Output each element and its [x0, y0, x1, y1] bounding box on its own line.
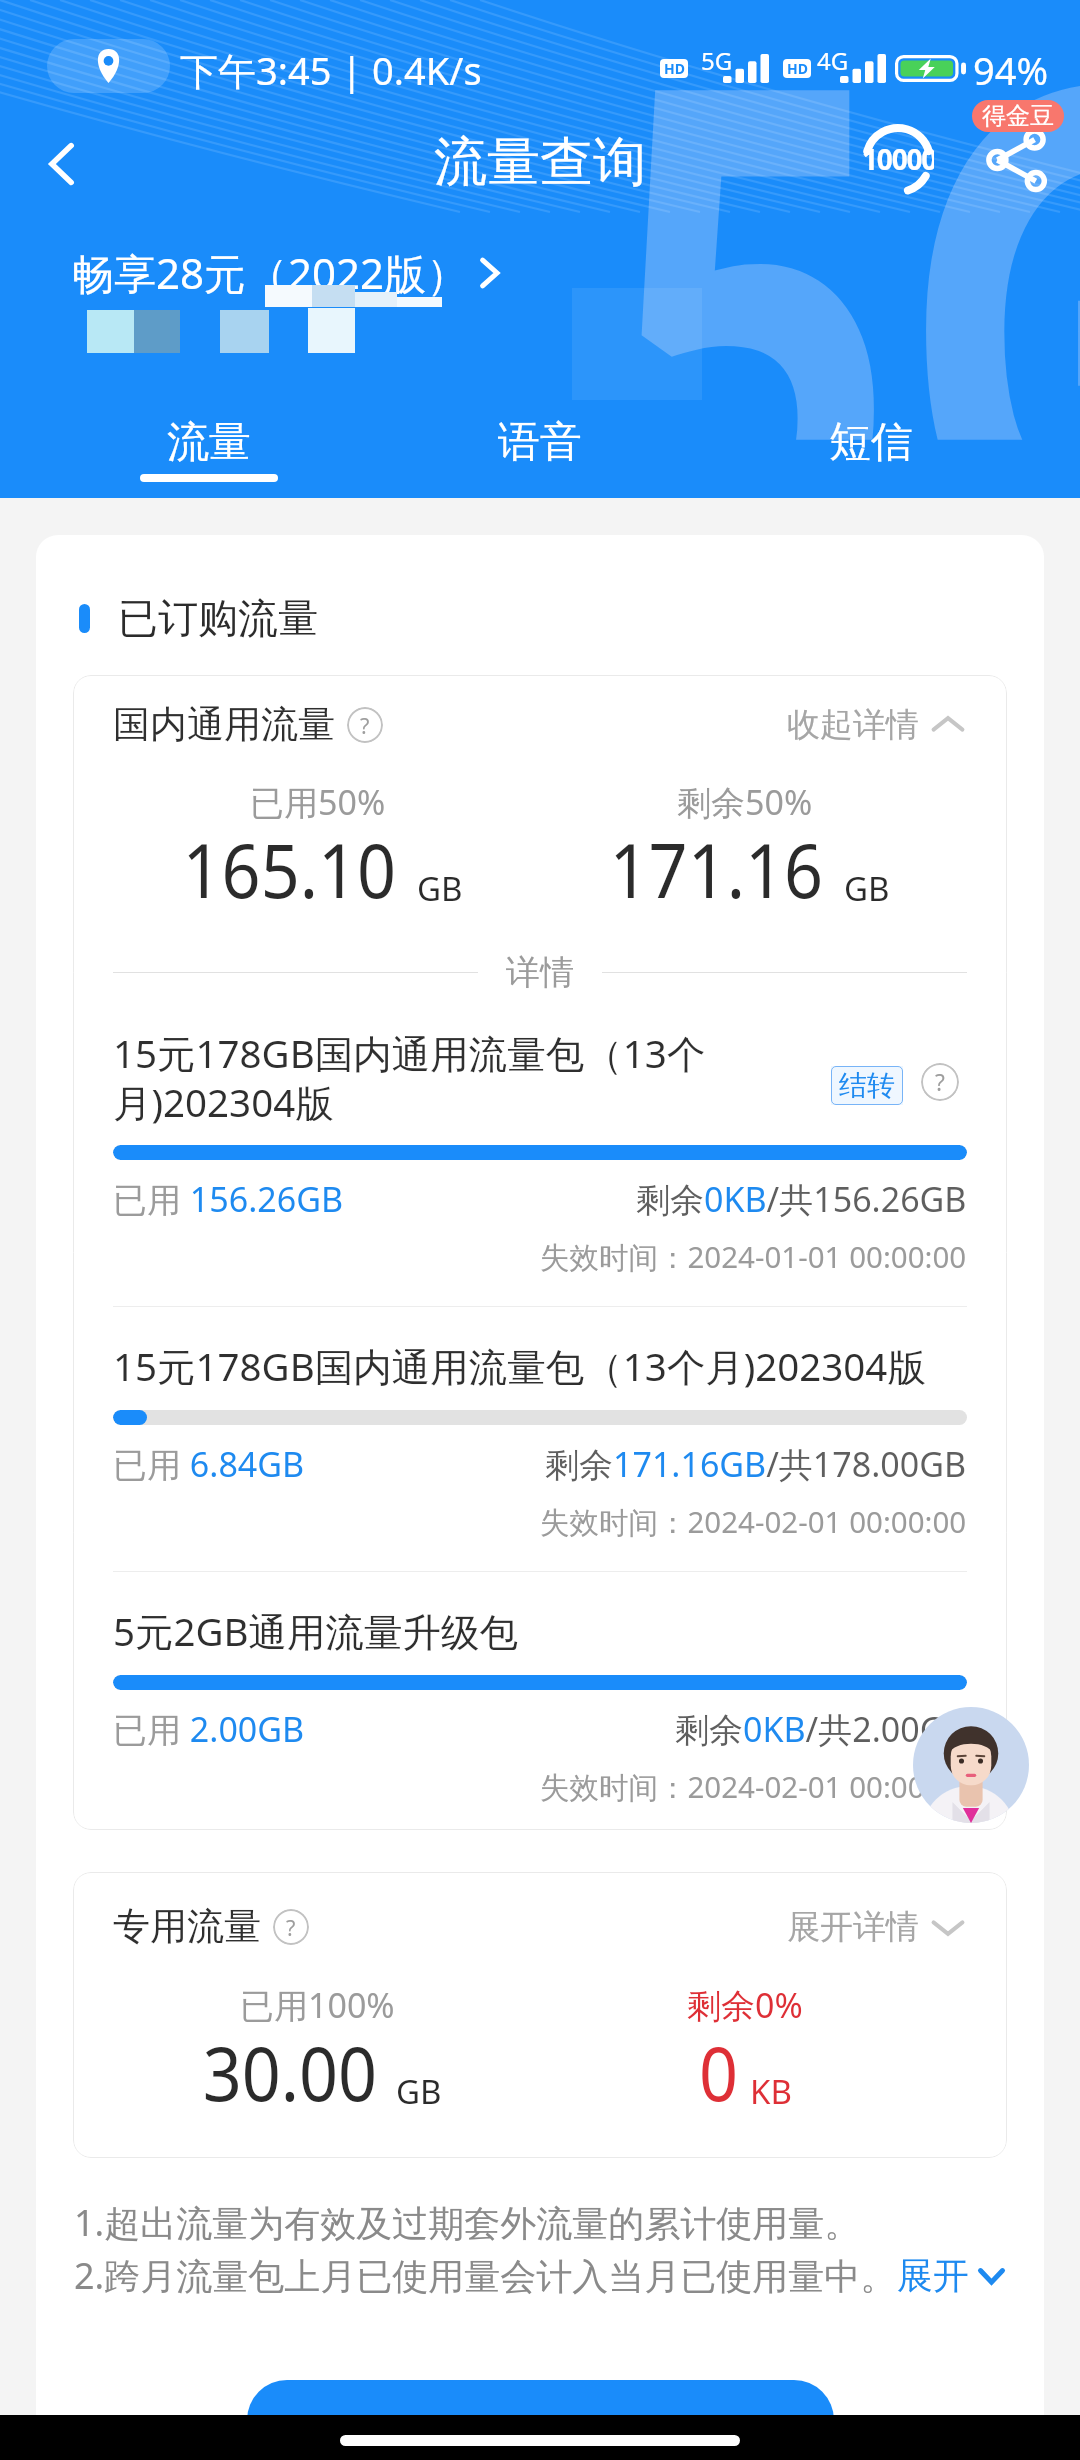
staticText: ?	[935, 1067, 945, 1098]
staticText: 15元178GB国内通用流量包（13个月)202304版	[113, 1340, 967, 1393]
staticText: 5G	[701, 44, 733, 77]
button[interactable]: Share	[968, 112, 1064, 208]
staticText: 下午3:45 | 0.4K/s	[180, 44, 482, 96]
staticText: ?	[286, 1913, 296, 1942]
staticText: 收起详情	[787, 704, 919, 746]
staticText: GB	[417, 866, 463, 911]
staticText: 展开	[897, 2253, 969, 2298]
button[interactable]: Online customer service	[913, 1707, 1029, 1823]
button[interactable]: 展开详情	[787, 1906, 967, 1948]
staticText: 流量	[167, 416, 251, 469]
staticText: 失效时间：2024-01-01 00:00:00	[540, 1236, 967, 1276]
staticText: HD	[664, 59, 685, 78]
button[interactable]: 收起详情	[787, 704, 967, 746]
staticText: 剩余0%	[687, 1982, 803, 2028]
staticText: 94%	[973, 44, 1049, 96]
staticText: 畅享28元（2022版）	[72, 244, 469, 301]
staticText: 失效时间：2024-02-01 00:00:00	[540, 1501, 967, 1541]
button[interactable]: Back	[16, 118, 108, 210]
staticText: 30.00	[203, 2021, 377, 2123]
button[interactable]: 查看详单	[247, 2380, 834, 2460]
staticText: 流量查询	[434, 129, 646, 196]
staticText: 剩余0KB/共156.26GB	[636, 1176, 967, 1222]
staticText: 展开详情	[787, 1906, 919, 1948]
staticText: 2.跨月流量包上月已使用量会计入当月已使用量中。	[74, 2251, 897, 2300]
button[interactable]: 流量	[44, 0, 374, 498]
staticText: GB	[844, 866, 890, 911]
button[interactable]: Customer service 10000	[850, 112, 946, 208]
button[interactable]: 展开	[897, 2253, 1006, 2298]
staticText: 171.16	[610, 818, 823, 920]
staticText: 语音	[498, 416, 582, 469]
staticText: 剩余50%	[677, 779, 813, 825]
staticText: GB	[396, 2069, 442, 2114]
staticText: HD	[787, 59, 808, 78]
staticText: 结转	[839, 1068, 895, 1103]
staticText: 得金豆	[982, 101, 1054, 131]
button[interactable]: 语音	[374, 0, 705, 498]
staticText: KB	[750, 2069, 792, 2114]
button[interactable]: Help	[347, 707, 383, 743]
staticText: 国内通用流量	[113, 701, 335, 748]
staticText: 已用 156.26GB	[113, 1176, 344, 1222]
staticText: 10000	[862, 140, 934, 178]
staticText: 已用 6.84GB	[113, 1441, 305, 1487]
staticText: 已用100%	[240, 1982, 395, 2028]
staticText: 5G	[610, 0, 1080, 440]
staticText: 剩余0KB/共2.00GB	[675, 1706, 967, 1752]
staticText: 5元2GB通用流量升级包	[113, 1605, 967, 1658]
staticText: 4G	[817, 44, 849, 77]
button[interactable]: 得金豆	[972, 100, 1064, 132]
button[interactable]: 畅享28元（2022版）	[72, 244, 509, 301]
staticText: 已用50%	[250, 779, 386, 825]
staticText: ?	[360, 711, 370, 740]
button[interactable]: 短信	[705, 0, 1036, 498]
staticText: 详情	[506, 951, 574, 994]
staticText: 1.超出流量为有效及过期套外流量的累计使用量。	[74, 2198, 861, 2247]
staticText: 剩余171.16GB/共178.00GB	[545, 1441, 967, 1487]
staticText: 0	[699, 2021, 738, 2123]
button[interactable]: Help	[273, 1909, 309, 1945]
button[interactable]: Help	[921, 1063, 959, 1101]
staticText: 已订购流量	[118, 593, 318, 643]
staticText: 165.10	[183, 818, 396, 920]
staticText: 失效时间：2024-02-01 00:00:00	[540, 1766, 967, 1806]
staticText: 短信	[829, 416, 913, 469]
staticText: 专用流量	[113, 1903, 261, 1950]
staticText: 已用 2.00GB	[113, 1706, 305, 1752]
staticText: 15元178GB国内通用流量包（13个月)202304版	[113, 1027, 809, 1128]
